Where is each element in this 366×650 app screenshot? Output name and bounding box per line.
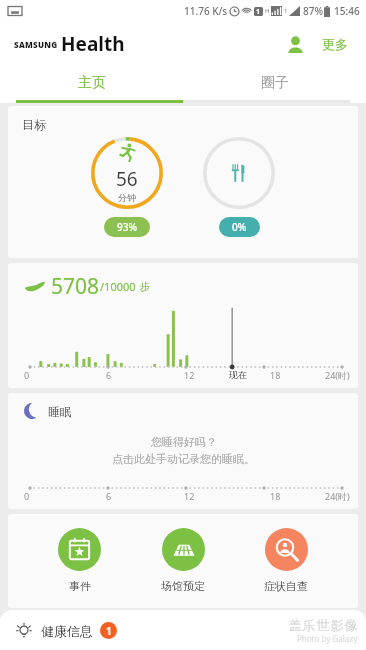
staticText: 1 [284,7,288,15]
button[interactable]: 圈子 [183,66,366,100]
staticText: 24(时) [325,490,350,502]
staticText: 18 [270,490,281,502]
button[interactable]: Profile [278,27,312,61]
staticText: 症状自查 [264,579,308,593]
staticText: Photo by Galaxy [297,633,358,644]
staticText: 15:46 [334,4,360,18]
staticText: 12 [184,490,195,502]
staticText: 87% [303,4,323,18]
staticText: 您睡得好吗？ [151,435,217,449]
staticText: 盖乐世影像 [288,617,358,633]
staticText: 93% [117,220,137,234]
staticText: 1 [256,7,261,16]
button[interactable]: 健康信息 [0,610,366,650]
button[interactable]: 睡眠 [8,393,358,509]
staticText: 场馆预定 [161,579,205,593]
staticText: 1 [106,624,112,638]
staticText: H [265,7,270,15]
staticText: SAMSUNG [14,39,58,50]
staticText: /10000 [100,279,136,294]
button[interactable]: 症状自查 [254,526,318,595]
button[interactable]: 目标 [8,106,358,258]
staticText: 主页 [78,74,106,92]
staticText: 6 [106,369,112,381]
button[interactable]: 更多 [316,30,354,58]
staticText: 0 [24,490,30,502]
staticText: 6 [106,490,112,502]
staticText: 0% [232,220,247,234]
staticText: 24(时) [325,369,350,381]
button[interactable]: 主页 [0,66,183,100]
staticText: 事件 [69,579,91,593]
button[interactable]: 场馆预定 [151,526,215,595]
staticText: 步 [140,280,150,293]
staticText: 分钟 [118,192,136,203]
staticText: 5708 [51,272,100,301]
staticText: 目标 [22,117,46,132]
staticText: 更多 [322,36,348,52]
staticText: 11.76 K/s [184,4,228,18]
staticText: 18 [270,369,281,381]
staticText: 健康信息 [41,623,93,639]
button[interactable]: 事件 [48,526,111,595]
staticText: 睡眠 [48,404,72,419]
staticText: 0 [24,369,30,381]
staticText: Health [61,31,125,57]
staticText: 圈子 [261,74,289,92]
staticText: 现在 [229,369,247,380]
staticText: 56 [116,166,138,192]
staticText: 12 [184,369,195,381]
staticText: 点击此处手动记录您的睡眠。 [112,452,255,466]
button[interactable]: 5708 [8,263,358,388]
